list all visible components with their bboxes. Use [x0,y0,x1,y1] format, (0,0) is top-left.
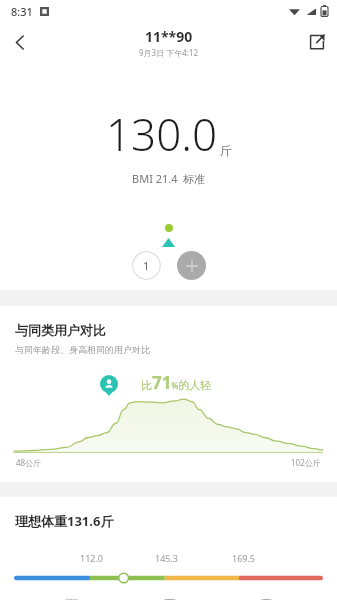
button[interactable]: 缩小 [44,598,98,600]
staticText: 与同类用户对比 [15,322,106,338]
staticText: BMI 21.4 标准 [132,171,206,186]
staticText: 比71%的人轻 [141,371,212,394]
button[interactable]: 删除 [239,598,293,600]
button[interactable]: 记体重 [142,598,196,600]
button[interactable]: Back [0,22,40,62]
staticText: 与同年龄段、身高相同的用户对比 [15,344,150,355]
staticText: 145.3 [155,552,179,564]
staticText: 9月3日 下午4:12 [139,47,199,58]
staticText: 48公斤 [16,457,42,468]
staticText: 理想体重131.6斤 [15,512,114,530]
button[interactable]: 1 [132,251,161,280]
staticText: 112.0 [80,552,104,564]
staticText: 169.5 [232,552,256,564]
button[interactable]: Add [177,251,206,280]
staticText: 102公斤 [291,457,321,468]
staticText: 11**90 [145,27,193,46]
staticText: 斤 [220,143,232,158]
staticText: 130.0 [106,104,218,164]
staticText: 1 [143,258,150,273]
staticText: 8:31 [11,4,33,19]
button[interactable]: Share [297,22,337,62]
